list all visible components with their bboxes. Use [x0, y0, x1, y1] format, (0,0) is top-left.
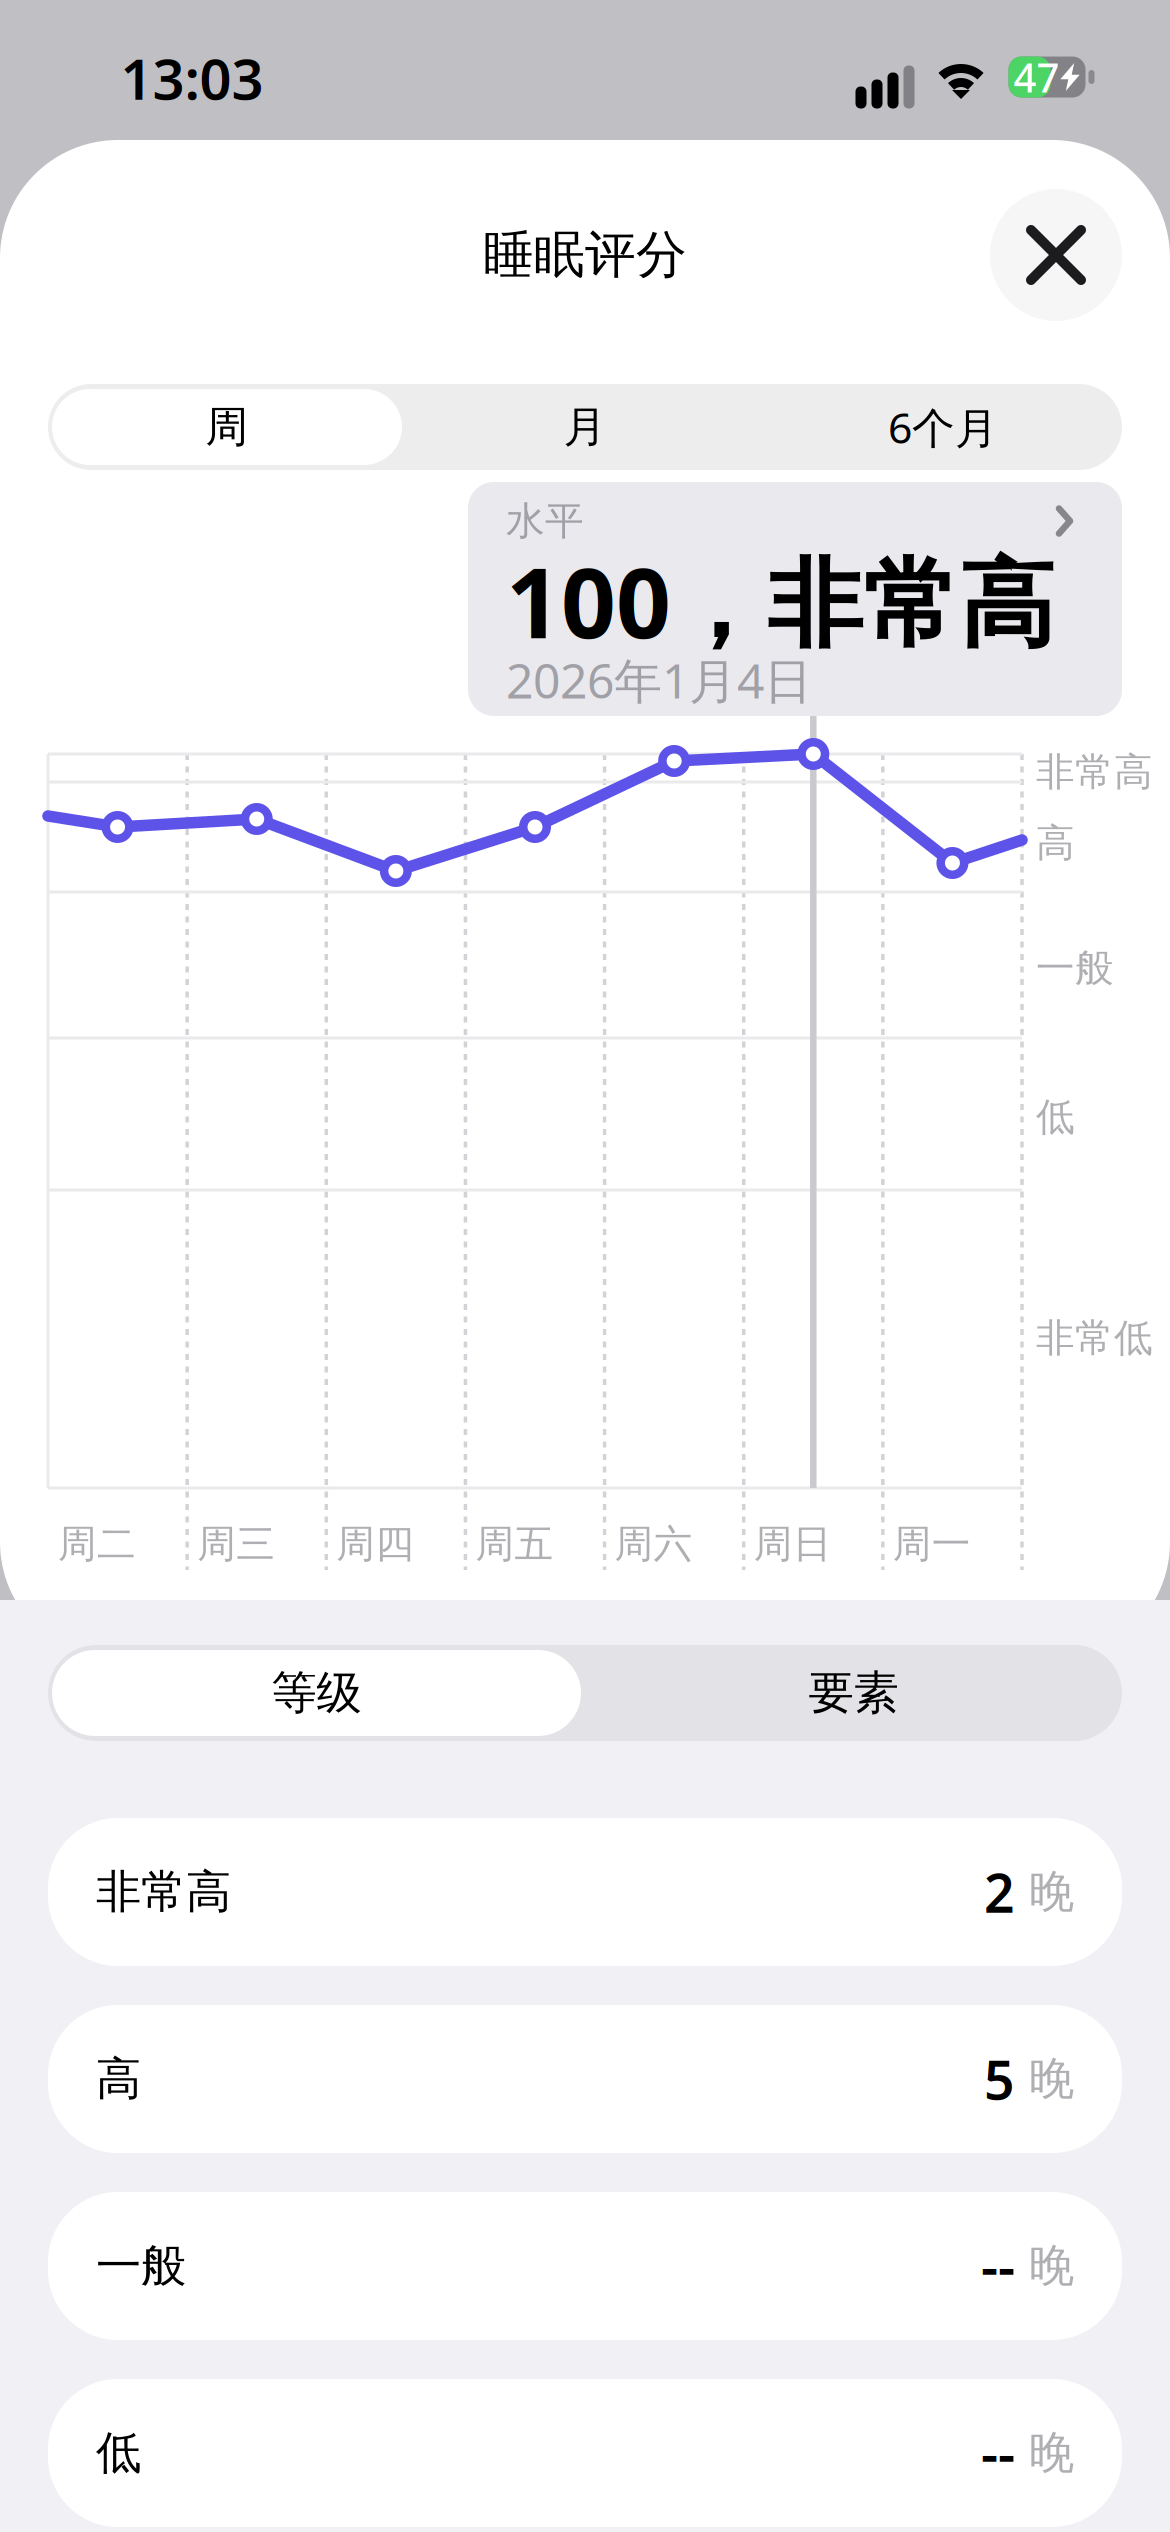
- staticText: 周一: [893, 1520, 971, 1568]
- staticText: 2026年1月4日: [506, 648, 812, 712]
- staticText: 一般: [1036, 944, 1114, 992]
- staticText: 100，非常高: [506, 537, 1055, 665]
- staticText: 6个月: [888, 399, 998, 455]
- button[interactable]: 高: [48, 2005, 1122, 2153]
- staticText: 周三: [197, 1520, 275, 1568]
- staticText: 非常高: [96, 1864, 231, 1920]
- button[interactable]: 要素: [585, 1645, 1122, 1741]
- staticText: 2: [984, 1857, 1015, 1927]
- button[interactable]: 月: [406, 384, 764, 470]
- staticText: 周二: [58, 1520, 136, 1568]
- button[interactable]: 非常高: [48, 1818, 1122, 1966]
- staticText: 非常高: [1036, 748, 1153, 796]
- staticText: 低: [1036, 1093, 1075, 1141]
- staticText: 周五: [475, 1520, 553, 1568]
- button[interactable]: 6个月: [764, 384, 1122, 470]
- button[interactable]: 水平: [468, 482, 1122, 716]
- staticText: 晚: [1029, 2051, 1074, 2107]
- staticText: 非常低: [1036, 1314, 1153, 1362]
- staticText: 晚: [1029, 2425, 1074, 2481]
- staticText: 高: [96, 2051, 141, 2107]
- staticText: 周四: [336, 1520, 414, 1568]
- staticText: 高: [1036, 819, 1075, 867]
- staticText: 一般: [96, 2238, 186, 2294]
- staticText: 晚: [1029, 1864, 1074, 1920]
- staticText: 低: [96, 2425, 141, 2481]
- staticText: --: [981, 2231, 1015, 2301]
- staticText: 等级: [271, 1665, 361, 1721]
- button[interactable]: 一般: [48, 2192, 1122, 2340]
- staticText: 13:03: [120, 41, 263, 115]
- staticText: 月: [563, 401, 606, 453]
- staticText: 要素: [808, 1665, 898, 1721]
- staticText: 周: [205, 401, 248, 453]
- button[interactable]: 周: [48, 384, 406, 470]
- button[interactable]: 等级: [48, 1645, 585, 1741]
- staticText: 水平: [506, 497, 584, 545]
- staticText: 晚: [1029, 2238, 1074, 2294]
- button[interactable]: 低: [48, 2379, 1122, 2527]
- staticText: 睡眠评分: [483, 224, 687, 286]
- button[interactable]: Close: [990, 189, 1122, 321]
- staticText: --: [981, 2418, 1015, 2488]
- staticText: 47: [1013, 50, 1059, 103]
- staticText: 周六: [615, 1520, 693, 1568]
- staticText: 5: [984, 2044, 1015, 2114]
- staticText: 周日: [754, 1520, 832, 1568]
